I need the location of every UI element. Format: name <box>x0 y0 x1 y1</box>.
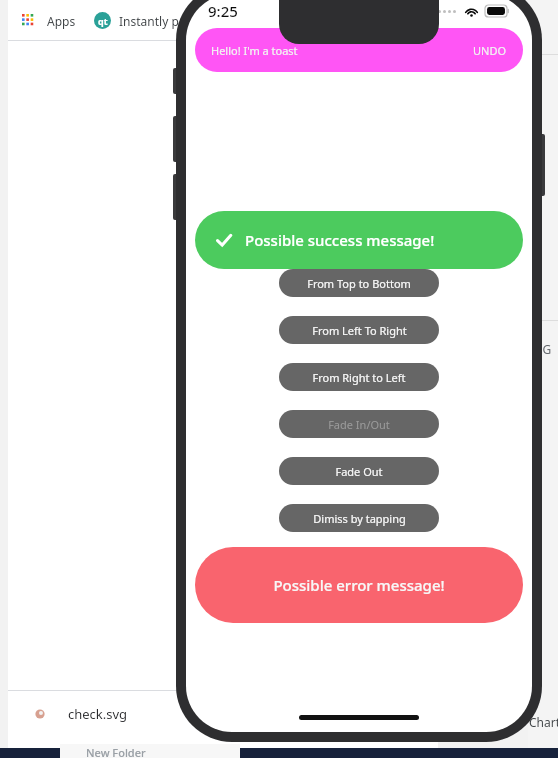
staticText: 9:25 <box>208 1 238 21</box>
staticText: From Left To Right <box>312 323 407 338</box>
staticText: From Top to Bottom <box>307 276 411 291</box>
staticText: Apps <box>47 13 76 29</box>
staticText: Possible error message! <box>273 575 445 595</box>
button[interactable]: Possible error message! <box>195 547 523 623</box>
staticText: Fade Out <box>335 464 383 479</box>
staticText: qt <box>98 15 108 27</box>
button[interactable]: Hello! I'm a toast <box>195 28 523 72</box>
staticText: Dimiss by tapping <box>313 511 406 526</box>
button[interactable]: From Right to Left <box>279 363 439 391</box>
staticText: Chart <box>529 714 558 730</box>
button[interactable]: Fade In/Out <box>279 410 439 438</box>
staticText: From Right to Left <box>312 370 406 385</box>
staticText: check.svg <box>68 705 128 723</box>
button[interactable]: Dimiss by tapping <box>279 504 439 532</box>
button[interactable]: Success <box>195 211 523 269</box>
button[interactable]: From Left To Right <box>279 316 439 344</box>
staticText: UNDO <box>473 43 507 58</box>
button[interactable]: From Top to Bottom <box>279 269 439 297</box>
staticText: From Bottom to Top <box>307 229 411 244</box>
button[interactable]: Fade Out <box>279 457 439 485</box>
staticText: n G <box>532 341 552 357</box>
staticText: Fade In/Out <box>328 417 390 432</box>
button[interactable]: From Bottom to Top <box>279 222 439 250</box>
staticText: Possible success message! <box>245 230 435 250</box>
other: Success <box>215 231 233 249</box>
staticText: Instantly pa <box>119 13 186 29</box>
staticText: New Folder <box>86 745 146 758</box>
staticText: Hello! I'm a toast <box>211 43 298 58</box>
